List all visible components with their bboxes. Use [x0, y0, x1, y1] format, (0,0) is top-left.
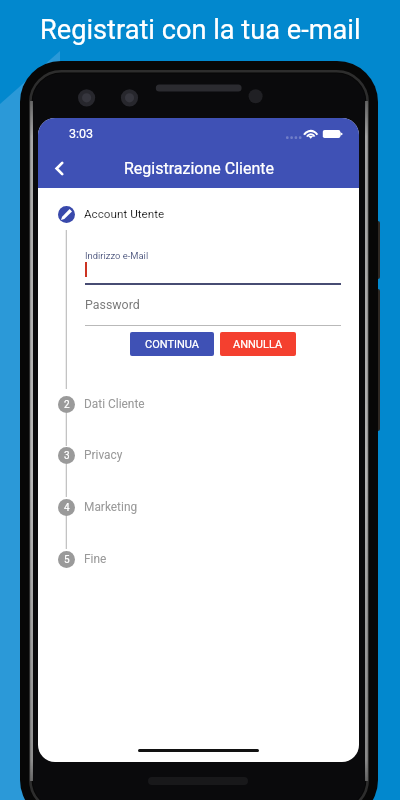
staticText: 3 [64, 450, 70, 462]
staticText: ANNULLA [233, 338, 283, 351]
button[interactable]: 2 [44, 392, 359, 416]
button[interactable]: ANNULLA [220, 332, 296, 356]
button[interactable]: 3 [44, 443, 359, 467]
staticText: Password [85, 297, 140, 312]
staticText: Registrati con la tua e-mail [40, 14, 361, 46]
button[interactable]: Back [40, 149, 78, 187]
button[interactable]: 5 [44, 547, 359, 571]
staticText: 4 [64, 502, 70, 514]
staticText: Fine [84, 552, 107, 566]
button[interactable]: Account Utente [84, 204, 165, 224]
staticText: Privacy [84, 448, 123, 462]
staticText: Dati Cliente [84, 397, 145, 411]
staticText: CONTINUA [145, 338, 200, 351]
button[interactable]: CONTINUA [130, 332, 214, 356]
staticText: Indirizzo e-Mail [85, 250, 149, 261]
staticText: Marketing [84, 500, 138, 514]
staticText: 5 [64, 554, 70, 566]
staticText: Account Utente [84, 207, 165, 221]
staticText: 3:03 [69, 126, 94, 141]
button[interactable]: 4 [44, 495, 359, 519]
staticText: 2 [64, 399, 70, 411]
staticText: Registrazione Cliente [124, 159, 274, 178]
